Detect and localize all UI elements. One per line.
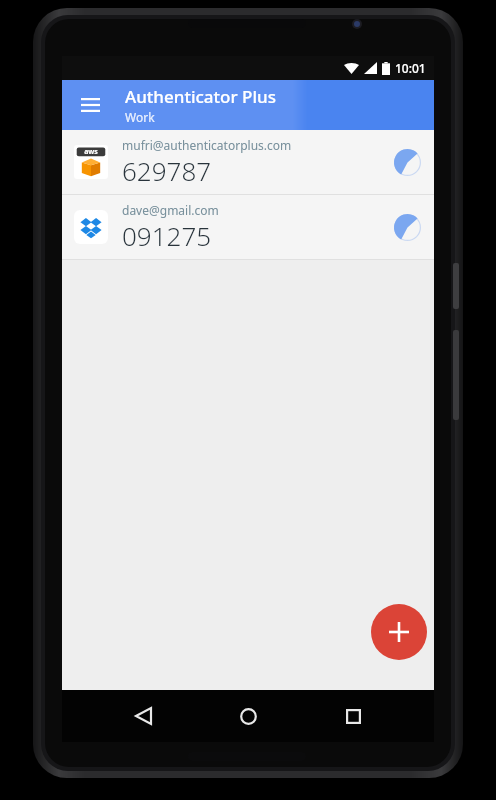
staticText: Work xyxy=(125,109,155,125)
button[interactable]: Back xyxy=(119,692,167,740)
staticText: 091275 xyxy=(122,218,212,253)
staticText: Authenticator Plus xyxy=(125,85,276,108)
staticText: aws xyxy=(84,147,98,157)
button[interactable]: Home xyxy=(224,692,272,740)
other: Code expiry timer xyxy=(392,212,422,242)
button[interactable]: aws xyxy=(62,130,434,194)
button[interactable]: dave@gmail.com xyxy=(62,195,434,259)
button[interactable]: Open navigation drawer xyxy=(70,85,110,125)
staticText: 629787 xyxy=(122,153,212,188)
other: Code expiry timer xyxy=(392,147,422,177)
staticText: 10:01 xyxy=(395,60,426,76)
staticText: dave@gmail.com xyxy=(122,202,219,218)
button[interactable]: Recent apps xyxy=(329,692,377,740)
button[interactable]: Add account xyxy=(371,604,427,660)
staticText: mufri@authenticatorplus.com xyxy=(122,137,292,153)
